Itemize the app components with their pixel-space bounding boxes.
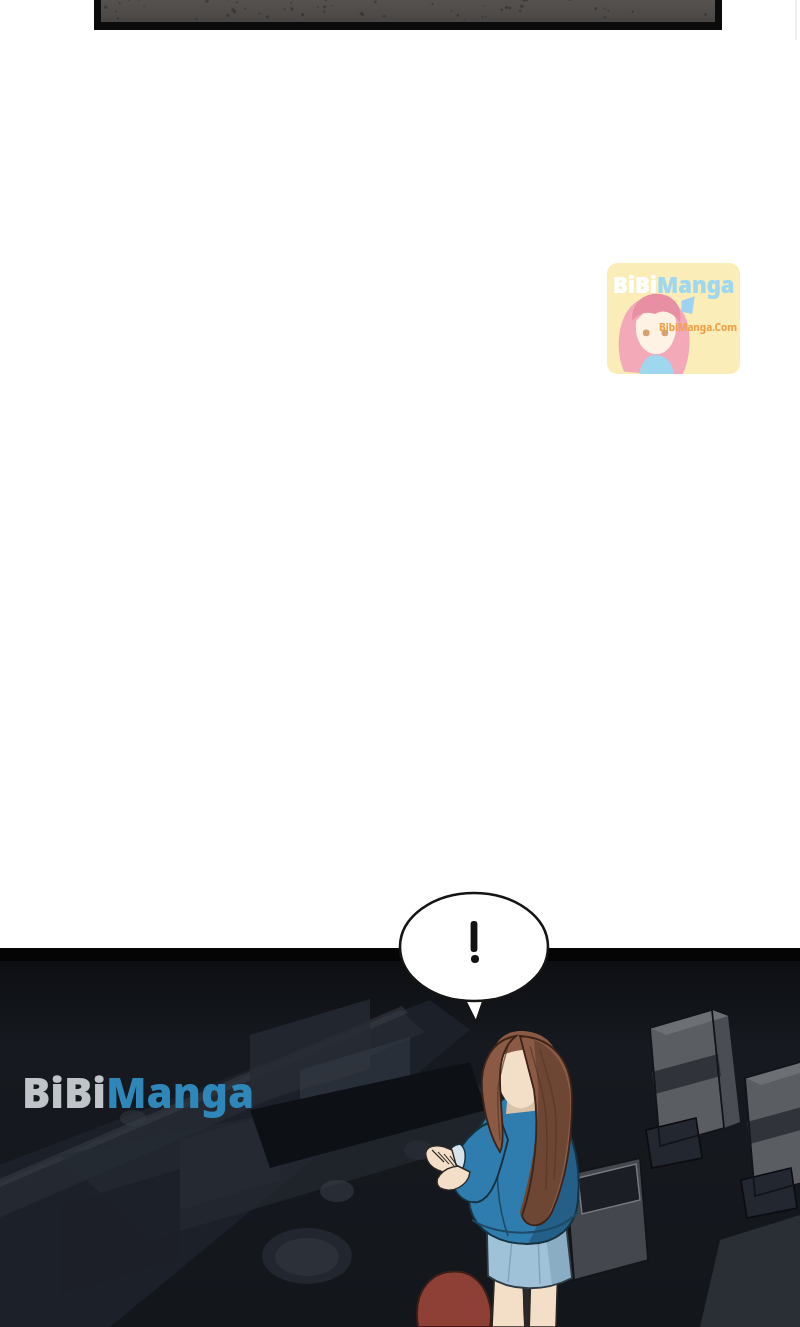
staticText: Manga (657, 269, 735, 299)
staticText: BibiManga.Com (659, 320, 737, 334)
button[interactable]: BiBi (0, 0, 800, 1327)
staticText: BiBi (613, 269, 657, 299)
staticText: BiBi (22, 1063, 106, 1120)
staticText: Manga (106, 1063, 255, 1120)
button[interactable]: BibiManga watermark logo (607, 263, 740, 374)
